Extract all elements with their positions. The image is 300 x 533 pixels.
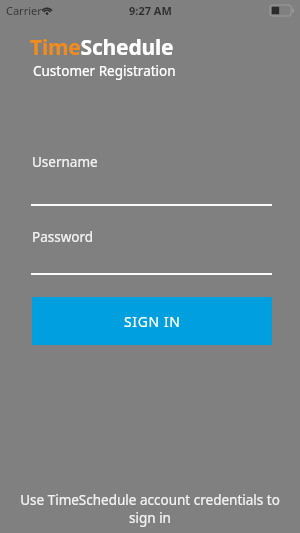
staticText: 9:27 AM: [129, 3, 172, 18]
staticText: Carrier: [6, 3, 42, 18]
staticText: Password: [32, 228, 94, 246]
button[interactable]: SIGN IN: [32, 297, 272, 345]
staticText: Username: [32, 153, 98, 171]
staticText: TimeSchedule: [30, 33, 174, 62]
staticText: Use TimeSchedule account credentials to …: [16, 491, 284, 527]
staticText: SIGN IN: [124, 312, 181, 331]
staticText: Customer Registration: [33, 62, 176, 80]
